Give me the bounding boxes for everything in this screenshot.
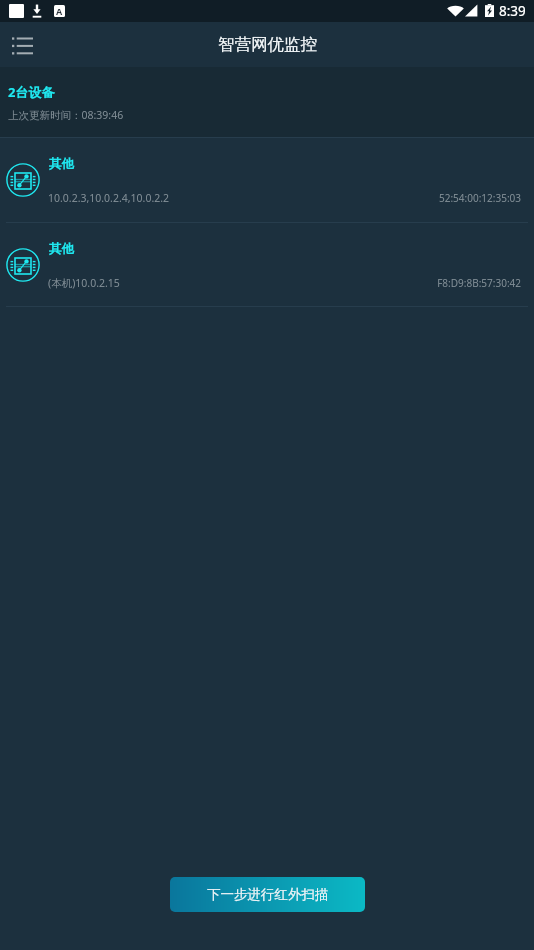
staticText: 上次更新时间：08:39:46 [8, 108, 124, 122]
staticText: 其他 [49, 241, 74, 257]
button[interactable]: 其他 [0, 138, 534, 221]
staticText: 其他 [49, 156, 74, 172]
staticText: A [56, 5, 63, 17]
button[interactable]: Menu [4, 27, 40, 63]
staticText: 8:39 [499, 2, 526, 20]
staticText: F8:D9:8B:57:30:42 [0, 276, 521, 290]
staticText: 2台设备 [8, 83, 55, 101]
staticText: (本机)10.0.2.15 [48, 276, 120, 290]
button[interactable]: 下一步进行红外扫描 [170, 877, 365, 912]
button[interactable]: 其他 [0, 223, 534, 306]
staticText: 52:54:00:12:35:03 [0, 191, 521, 205]
staticText: 下一步进行红外扫描 [207, 886, 329, 903]
staticText: 10.0.2.3,10.0.2.4,10.0.2.2 [48, 191, 170, 205]
staticText: 智营网优监控 [218, 34, 317, 55]
